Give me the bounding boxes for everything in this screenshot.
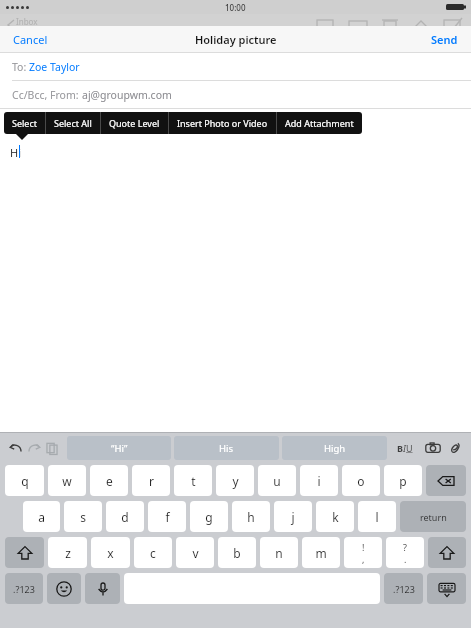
- staticText: Cc/Bcc, From:: [12, 88, 82, 102]
- staticText: e: [106, 473, 113, 489]
- staticText: Quote Level: [109, 117, 160, 129]
- staticText: c: [150, 545, 156, 561]
- staticText: Select: [12, 117, 37, 129]
- staticText: High: [324, 442, 346, 455]
- button[interactable]: Attach: [446, 439, 464, 457]
- button[interactable]: Emoji: [47, 573, 81, 604]
- staticText: o: [357, 473, 365, 489]
- staticText: r: [149, 473, 154, 489]
- button[interactable]: Paste: [43, 439, 61, 457]
- staticText: “Hi”: [111, 442, 128, 455]
- button[interactable]: Send: [418, 26, 471, 53]
- button[interactable]: x: [91, 537, 130, 568]
- button[interactable]: High: [282, 436, 387, 460]
- button[interactable]: r: [132, 465, 170, 496]
- staticText: 10:00: [225, 2, 246, 13]
- button[interactable]: j: [274, 501, 312, 532]
- button[interactable]: t: [174, 465, 212, 496]
- button[interactable]: d: [106, 501, 144, 532]
- staticText: .?123: [393, 583, 415, 595]
- button[interactable]: m: [302, 537, 340, 568]
- button[interactable]: z: [48, 537, 87, 568]
- staticText: .?123: [13, 583, 35, 595]
- staticText: Inbox: [16, 16, 38, 27]
- staticText: z: [65, 545, 71, 561]
- button[interactable]: Quote Level: [101, 112, 168, 134]
- button[interactable]: B: [395, 442, 415, 454]
- staticText: j: [291, 509, 295, 525]
- button[interactable]: Cancel: [0, 26, 61, 53]
- staticText: i: [317, 473, 321, 489]
- button[interactable]: n: [260, 537, 298, 568]
- staticText: Hi: [10, 145, 21, 160]
- staticText: Select All: [54, 117, 92, 129]
- button[interactable]: His: [174, 436, 279, 460]
- button[interactable]: f: [148, 501, 186, 532]
- staticText: ,: [362, 553, 365, 565]
- button[interactable]: a: [23, 501, 60, 532]
- button[interactable]: c: [134, 537, 172, 568]
- button[interactable]: y: [216, 465, 254, 496]
- button[interactable]: e: [90, 465, 128, 496]
- staticText: Holiday picture: [195, 32, 277, 47]
- staticText: g: [205, 509, 213, 525]
- button[interactable]: Cc/Bcc, From:: [0, 81, 471, 108]
- button[interactable]: p: [384, 465, 422, 496]
- staticText: aj@groupwm.com: [82, 88, 172, 102]
- button[interactable]: Camera: [424, 439, 442, 457]
- staticText: m: [315, 545, 327, 561]
- staticText: w: [62, 473, 72, 489]
- staticText: Zoe Taylor: [29, 60, 80, 74]
- staticText: U: [406, 442, 413, 454]
- button[interactable]: b: [218, 537, 256, 568]
- button[interactable]: Shift: [5, 537, 44, 568]
- staticText: n: [275, 545, 283, 561]
- staticText: x: [107, 545, 114, 561]
- button[interactable]: k: [316, 501, 354, 532]
- staticText: Insert Photo or Video: [177, 117, 268, 129]
- button[interactable]: g: [190, 501, 228, 532]
- staticText: b: [233, 545, 241, 561]
- staticText: f: [165, 509, 170, 525]
- staticText: u: [273, 473, 281, 489]
- button[interactable]: v: [176, 537, 214, 568]
- button[interactable]: o: [342, 465, 380, 496]
- button[interactable]: Backspace: [426, 465, 466, 496]
- button[interactable]: w: [48, 465, 86, 496]
- button[interactable]: Shift: [428, 537, 466, 568]
- button[interactable]: Hide keyboard: [427, 573, 466, 604]
- button[interactable]: return: [400, 501, 466, 532]
- staticText: l: [375, 509, 379, 525]
- button[interactable]: Redo: [25, 439, 43, 457]
- button[interactable]: Undo: [7, 439, 25, 457]
- staticText: a: [38, 509, 45, 525]
- button[interactable]: ?: [386, 537, 424, 568]
- button[interactable]: Dictate: [85, 573, 120, 604]
- button[interactable]: Select All: [46, 112, 100, 134]
- staticText: Send: [431, 32, 458, 47]
- button[interactable]: l: [358, 501, 396, 532]
- button[interactable]: !: [344, 537, 382, 568]
- staticText: ?: [403, 541, 407, 553]
- button[interactable]: q: [5, 465, 44, 496]
- staticText: q: [21, 473, 29, 489]
- staticText: Cancel: [13, 32, 48, 47]
- staticText: v: [192, 545, 199, 561]
- button[interactable]: s: [64, 501, 102, 532]
- button[interactable]: .?123: [5, 573, 43, 604]
- button[interactable]: Add Attachment: [277, 112, 362, 134]
- button[interactable]: h: [232, 501, 270, 532]
- button[interactable]: “Hi”: [67, 436, 171, 460]
- button[interactable]: Select: [4, 112, 45, 134]
- staticText: s: [80, 509, 86, 525]
- staticText: .: [404, 553, 407, 565]
- button[interactable]: Insert Photo or Video: [169, 112, 276, 134]
- button[interactable]: i: [300, 465, 338, 496]
- button[interactable]: u: [258, 465, 296, 496]
- staticText: p: [399, 473, 407, 489]
- staticText: t: [191, 473, 196, 489]
- staticText: To:: [12, 60, 29, 74]
- button[interactable]: .?123: [384, 573, 423, 604]
- button[interactable]: To:: [0, 53, 471, 80]
